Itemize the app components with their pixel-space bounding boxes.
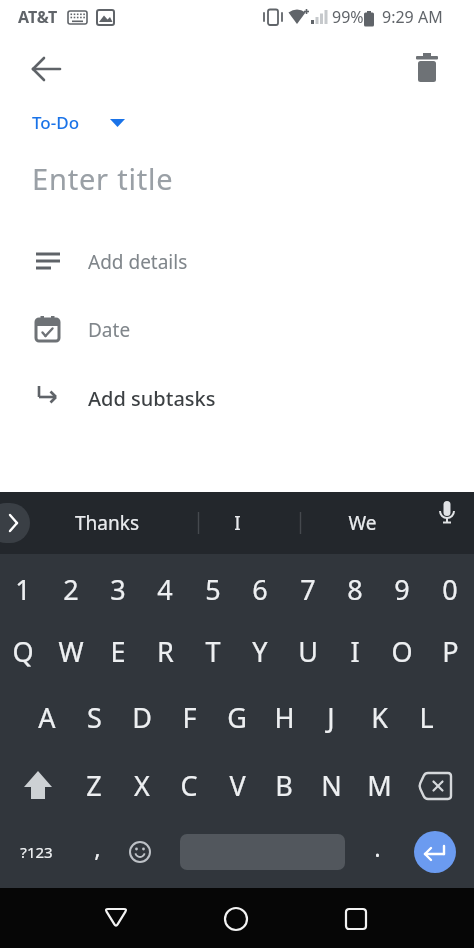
staticText: A — [38, 699, 56, 736]
button[interactable]: H — [244, 687, 324, 747]
button[interactable]: T — [173, 621, 253, 681]
staticText: 1 — [15, 571, 31, 608]
button[interactable]: 5 — [173, 559, 253, 619]
button[interactable] — [118, 830, 162, 874]
staticText: We — [348, 510, 377, 536]
button[interactable] — [332, 894, 380, 942]
staticText: P — [442, 633, 459, 670]
button[interactable]: L — [386, 687, 466, 747]
staticText: Z — [86, 767, 102, 804]
staticText: I — [350, 633, 360, 670]
button[interactable]: 9 — [362, 559, 442, 619]
staticText: N — [321, 767, 342, 804]
button[interactable] — [212, 894, 260, 942]
staticText: E — [110, 633, 126, 670]
staticText: I — [234, 510, 241, 536]
staticText: 8 — [347, 571, 363, 608]
button[interactable] — [403, 45, 451, 93]
button[interactable]: 3 — [78, 559, 158, 619]
staticText: , — [94, 831, 101, 864]
button[interactable]: F — [149, 687, 229, 747]
staticText: X — [134, 767, 150, 804]
button[interactable]: To-Do — [32, 104, 126, 140]
staticText: T — [205, 633, 221, 670]
button[interactable]: R — [125, 621, 205, 681]
button[interactable]: G — [197, 687, 277, 747]
button[interactable]: I — [315, 621, 395, 681]
button[interactable]: Y — [220, 621, 300, 681]
staticText: Add details — [88, 249, 188, 275]
button[interactable]: 0 — [410, 559, 474, 619]
button[interactable]: Date — [0, 296, 474, 364]
button[interactable] — [92, 894, 140, 942]
staticText: 3 — [110, 571, 126, 608]
staticText: 2 — [63, 571, 79, 608]
staticText: 9:29 AM — [382, 6, 443, 28]
button[interactable] — [0, 503, 30, 543]
button[interactable]: N — [291, 755, 371, 815]
button[interactable]: Add subtasks — [0, 364, 474, 432]
button[interactable]: 8 — [315, 559, 395, 619]
staticText: V — [229, 767, 246, 804]
staticText: D — [132, 699, 152, 736]
button[interactable]: , — [57, 817, 137, 877]
staticText: S — [87, 699, 102, 736]
button[interactable] — [23, 45, 71, 93]
staticText: L — [419, 699, 434, 736]
staticText: Date — [88, 317, 131, 343]
button[interactable] — [412, 761, 460, 809]
button[interactable]: Add details — [0, 228, 474, 296]
staticText: 0 — [442, 571, 458, 608]
staticText: K — [371, 699, 388, 736]
button[interactable]: M — [339, 755, 419, 815]
button[interactable]: Thanks — [67, 493, 147, 553]
staticText: 5 — [205, 571, 221, 608]
staticText: AT&T — [18, 6, 58, 28]
button[interactable]: C — [149, 755, 229, 815]
staticText: O — [391, 633, 413, 670]
button[interactable] — [14, 761, 62, 809]
button[interactable]: X — [102, 755, 182, 815]
button[interactable]: S — [54, 687, 134, 747]
button[interactable]: D — [102, 687, 182, 747]
staticText: M — [367, 767, 392, 804]
button[interactable]: E — [78, 621, 158, 681]
button[interactable]: I — [197, 493, 277, 553]
staticText: R — [157, 633, 174, 670]
staticText: G — [227, 699, 247, 736]
button[interactable]: Q — [0, 621, 63, 681]
staticText: F — [182, 699, 197, 736]
button[interactable]: 4 — [125, 559, 205, 619]
staticText: 99% — [332, 6, 364, 28]
staticText: 6 — [252, 571, 268, 608]
staticText: H — [274, 699, 295, 736]
staticText: 7 — [300, 571, 316, 608]
button[interactable] — [414, 831, 456, 873]
staticText: To-Do — [32, 111, 80, 134]
button[interactable]: W — [31, 621, 111, 681]
button[interactable]: P — [410, 621, 474, 681]
button[interactable]: 6 — [220, 559, 300, 619]
button[interactable]: 7 — [268, 559, 348, 619]
staticText: 9 — [394, 571, 410, 608]
button[interactable]: ?123 — [0, 822, 76, 882]
staticText: Enter title — [32, 159, 174, 198]
button[interactable]: 1 — [0, 559, 63, 619]
staticText: 4 — [157, 571, 173, 608]
button[interactable]: 2 — [31, 559, 111, 619]
button[interactable]: A — [7, 687, 87, 747]
button[interactable]: J — [291, 687, 371, 747]
button[interactable]: V — [197, 755, 277, 815]
button[interactable]: . — [337, 817, 417, 877]
button[interactable]: O — [362, 621, 442, 681]
button[interactable]: We — [322, 493, 402, 553]
staticText: ?123 — [20, 842, 53, 862]
button[interactable]: B — [244, 755, 324, 815]
button[interactable]: U — [268, 621, 348, 681]
staticText: C — [180, 767, 198, 804]
button[interactable]: Z — [54, 755, 134, 815]
button[interactable]: K — [339, 687, 419, 747]
staticText: B — [275, 767, 293, 804]
staticText: Y — [252, 633, 268, 670]
